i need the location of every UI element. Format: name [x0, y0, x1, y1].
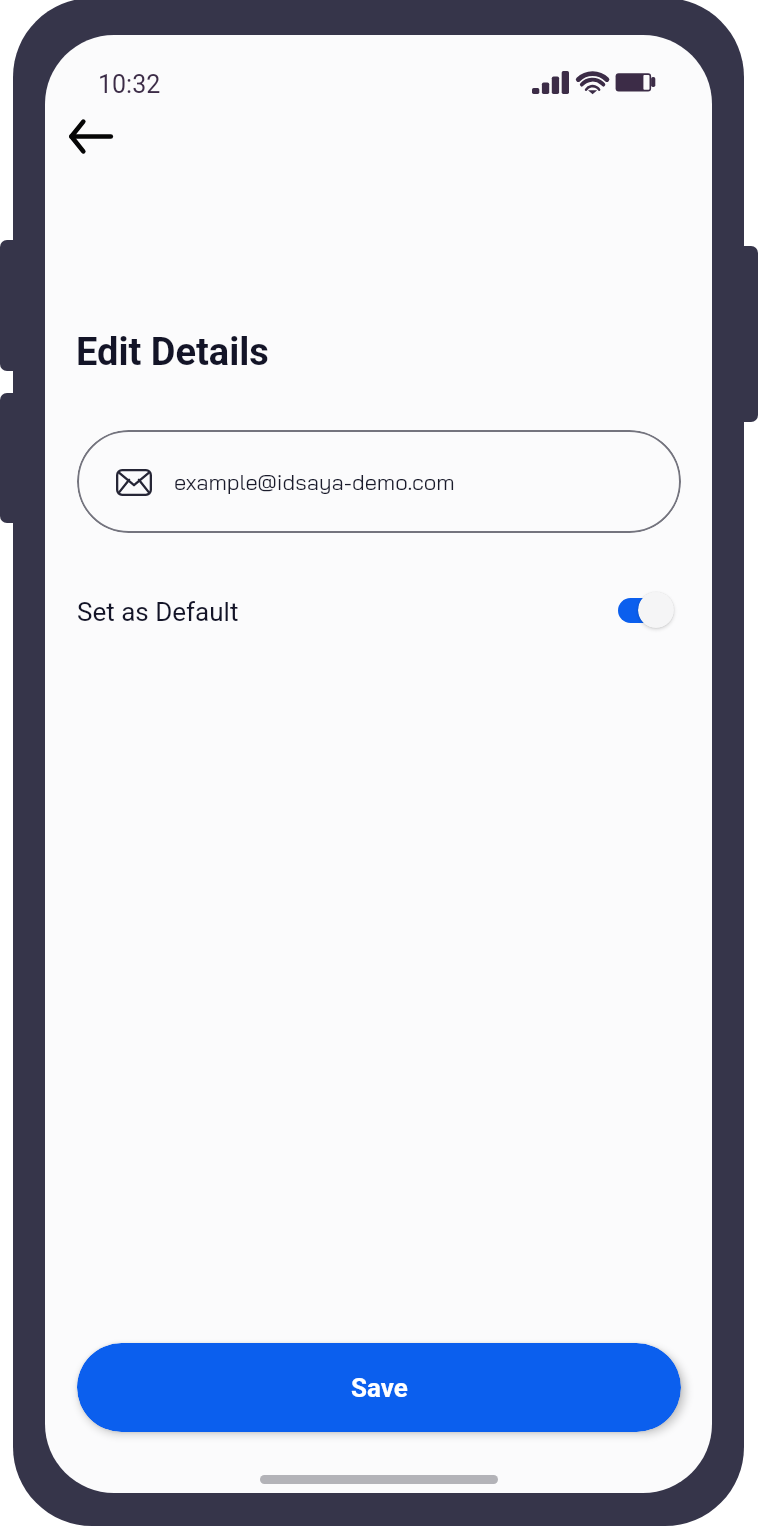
staticText: Save: [351, 1373, 408, 1403]
staticText: 10:32: [98, 70, 161, 99]
staticText: example@idsaya-demo.com: [174, 468, 455, 496]
button[interactable]: Set as Default: [77, 576, 681, 644]
button[interactable]: Save: [77, 1343, 681, 1432]
staticText: Edit Details: [76, 330, 269, 375]
button[interactable]: Set as Default, on: [617, 587, 681, 633]
button[interactable]: Back: [55, 100, 127, 172]
staticText: Set as Default: [77, 597, 239, 627]
button[interactable]: example@idsaya-demo.com: [77, 430, 681, 533]
